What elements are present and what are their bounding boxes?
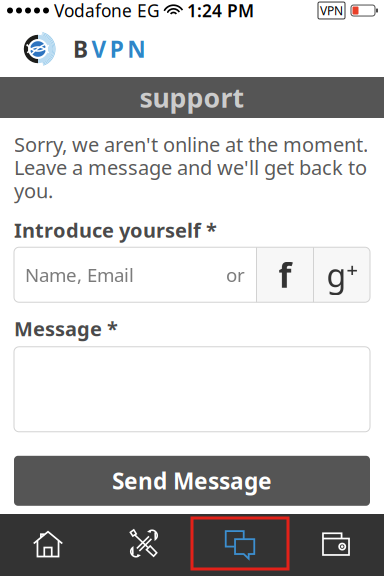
button[interactable]: Send Message <box>14 456 370 506</box>
staticText: P <box>110 34 124 64</box>
button[interactable]: Tools <box>96 514 192 576</box>
staticText: Send Message <box>112 466 272 496</box>
staticText: Vodafone EG <box>54 0 160 22</box>
staticText: VPN <box>320 2 343 18</box>
staticText: 1:24 PM <box>187 0 254 22</box>
button[interactable]: Sign in with Google Plus <box>314 247 370 302</box>
staticText: or <box>226 262 245 287</box>
staticText: V <box>91 34 106 64</box>
button[interactable]: Wallet <box>288 514 384 576</box>
staticText: N <box>127 34 145 64</box>
button[interactable]: Sign in with Facebook <box>257 247 313 302</box>
button[interactable]: Home <box>0 514 96 576</box>
staticText: g <box>326 253 346 296</box>
staticText: Name, Email <box>25 262 134 287</box>
staticText: B <box>73 34 88 64</box>
staticText: support <box>139 80 244 115</box>
staticText: + <box>346 256 357 283</box>
staticText: f <box>278 253 291 297</box>
staticText: Sorry, we aren't online at the moment. L… <box>14 131 368 204</box>
staticText: Introduce yourself * <box>14 217 217 243</box>
button[interactable]: Support <box>192 514 288 576</box>
staticText: Message * <box>14 315 118 342</box>
